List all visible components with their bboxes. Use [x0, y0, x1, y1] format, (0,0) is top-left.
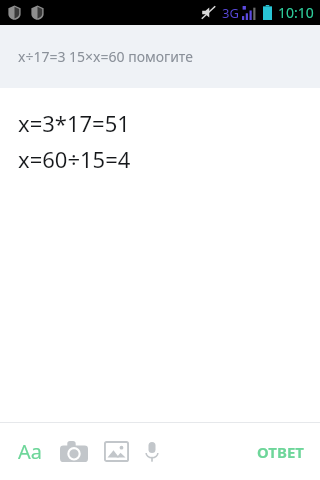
- button[interactable]: ОТВЕТ: [242, 432, 320, 472]
- staticText: Aa: [18, 438, 42, 465]
- staticText: x=3*17=51: [18, 108, 130, 138]
- button[interactable]: Take photo: [56, 437, 92, 466]
- staticText: ОТВЕТ: [257, 442, 305, 462]
- staticText: 10:10: [278, 3, 314, 22]
- staticText: 3G: [222, 4, 239, 22]
- button[interactable]: Attach image: [100, 437, 133, 466]
- button[interactable]: x÷17=3 15×x=60 помогите: [0, 25, 320, 88]
- staticText: x÷17=3 15×x=60 помогите: [18, 47, 193, 66]
- staticText: x=60÷15=4: [18, 144, 131, 174]
- button[interactable]: Aa: [14, 432, 46, 471]
- button[interactable]: Voice input: [141, 437, 163, 467]
